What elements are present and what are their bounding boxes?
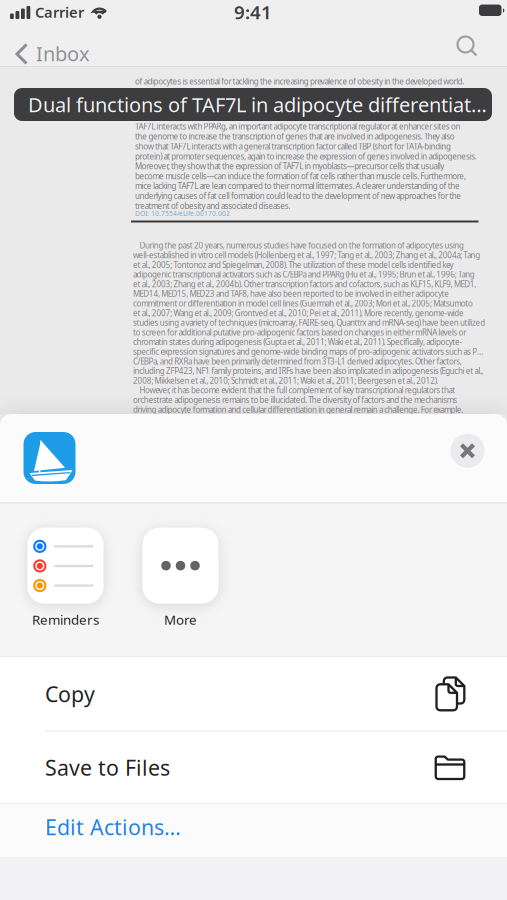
staticText: become muscle cells—can induce the forma… — [135, 171, 466, 181]
staticText: including ZFP423, NF1 family proteins, a… — [133, 366, 483, 376]
staticText: The result now reported that the TAF7L g… — [135, 86, 458, 97]
staticText: chromatin states during adipogenesis (Gu… — [133, 337, 463, 347]
staticText: However, it has become evident that the … — [133, 385, 455, 395]
button[interactable]: Close — [450, 434, 484, 468]
staticText: Edit Actions… — [45, 813, 181, 841]
staticText: Moreover, they show that the expression … — [135, 161, 444, 171]
staticText: MED14, MED15, MED23 and TAF8, have also … — [133, 288, 449, 299]
staticText: Save to Files — [45, 753, 170, 782]
button[interactable]: Inbox — [0, 0, 110, 66]
staticText: TAF7L interacts with PPARg, an important… — [135, 121, 461, 132]
button[interactable]: Reminders — [27, 528, 103, 628]
staticText: 2008; Mikkelsen et al., 2010; Schmidt et… — [133, 375, 438, 386]
staticText: driving adipocyte formation and cellular… — [133, 404, 463, 415]
button[interactable]: Edit Actions… — [45, 813, 245, 841]
staticText: commitment or differentiation in model c… — [133, 298, 473, 309]
staticText: Copy — [45, 680, 95, 708]
staticText: mice lacking TAF7L are lean compared to … — [135, 181, 460, 191]
staticText: treatment of obesity and associated dise… — [135, 200, 290, 211]
staticText: underlying causes of fat cell formation … — [135, 191, 461, 201]
staticText: the genome to increase the transcription… — [135, 131, 455, 142]
button[interactable]: Search — [456, 35, 477, 56]
button[interactable]: Copy — [0, 657, 507, 731]
staticText: During the past 20 years, numerous studi… — [133, 240, 464, 251]
button[interactable]: More — [142, 528, 218, 628]
staticText: of adipocytes is essential for tackling … — [135, 76, 464, 87]
staticText: Carrier — [35, 2, 84, 22]
staticText: More — [164, 611, 197, 628]
staticText: Inbox — [36, 40, 90, 67]
staticText: show that TAF7L interacts with a general… — [135, 141, 451, 152]
staticText: specific expression signatures and genom… — [133, 346, 485, 357]
staticText: et al., 2003; Zhang et al., 2004b). Othe… — [133, 279, 476, 289]
staticText: 9:41 — [234, 0, 272, 24]
staticText: well-established in vitro cell models (H… — [133, 250, 480, 260]
staticText: Reminders — [32, 611, 99, 628]
staticText: adipogenic transcriptional activators su… — [133, 269, 475, 280]
staticText: et al., 2007; Wang et al., 2009; Grontve… — [133, 308, 464, 318]
button[interactable]: Save to Files — [0, 731, 507, 803]
staticText: DOI: 10.7554/eLife.00170.002 — [135, 209, 230, 218]
staticText: to screen for additional putative pro-ad… — [133, 327, 466, 338]
staticText: studies using a variety of techniques (m… — [133, 317, 485, 328]
staticText: orchestrate adipogenesis remains to be i… — [133, 395, 457, 405]
staticText: Dual functions of TAF7L in adipocyte dif… — [28, 91, 490, 118]
staticText: et al., 2005; Tontonoz and Spiegelman, 2… — [133, 259, 454, 270]
staticText: C/EBPa, and RXRa have been primarily det… — [133, 356, 462, 367]
staticText: protein) at promoter sequences, again to… — [135, 151, 477, 162]
